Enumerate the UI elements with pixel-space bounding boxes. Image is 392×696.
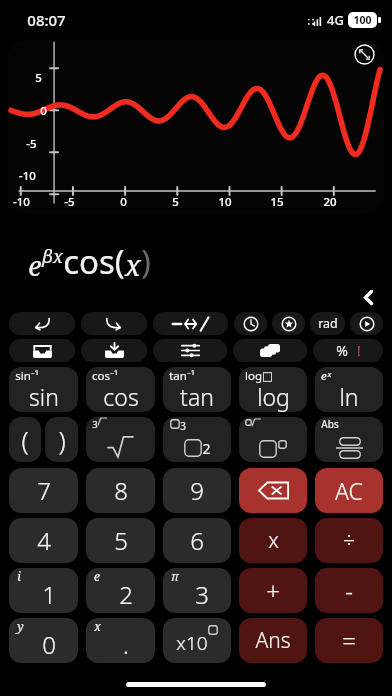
button[interactable]: Root and power (239, 417, 307, 462)
button[interactable]: ÷ (315, 518, 383, 563)
button[interactable]: 9 (163, 468, 231, 513)
staticText: 100 (353, 13, 372, 27)
button[interactable]: eˣ (315, 367, 383, 412)
staticText: βx (42, 244, 63, 269)
staticText: e (28, 247, 42, 284)
staticText: 15 (270, 194, 284, 210)
button[interactable]: cos⁻¹ (86, 367, 155, 412)
button[interactable]: e (86, 568, 155, 613)
staticText: ) (141, 239, 151, 284)
staticText: 0 (40, 103, 47, 119)
staticText: rad (318, 315, 338, 332)
button[interactable]: AC (315, 468, 383, 513)
button[interactable]: 7 (9, 468, 78, 513)
staticText: cos⁻¹ (92, 368, 118, 384)
button[interactable]: Expand graph (354, 44, 375, 65)
staticText: π (171, 568, 179, 584)
staticText: x (94, 618, 101, 634)
button[interactable]: Angle unit radians (310, 312, 345, 335)
button[interactable]: - (315, 568, 383, 613)
button[interactable]: Favourites (272, 312, 305, 335)
button[interactable]: Cube root and square root (86, 417, 155, 462)
staticText: 5 (35, 70, 42, 86)
button[interactable]: Ans (239, 618, 307, 663)
button[interactable]: Run (350, 312, 383, 335)
button[interactable]: i (9, 568, 78, 613)
button[interactable]: = (315, 618, 383, 663)
staticText: x (268, 526, 279, 555)
staticText: Ans (255, 626, 291, 655)
button[interactable]: Undo (9, 312, 75, 335)
button[interactable]: 8 (86, 468, 155, 513)
staticText: e (94, 568, 100, 584)
staticText: log□ (245, 368, 273, 384)
button[interactable]: 5 (86, 518, 155, 563)
staticText: ! (357, 341, 361, 360)
button[interactable]: Percent and factorial (313, 339, 383, 362)
staticText: 2 (202, 439, 211, 458)
staticText: 0 (42, 628, 56, 661)
staticText: 3 (180, 419, 186, 433)
staticText: 10 (218, 194, 232, 210)
staticText: -10 (13, 194, 30, 210)
button[interactable]: Tabs (233, 339, 307, 362)
button[interactable]: π (163, 568, 231, 613)
staticText: cos( (63, 239, 125, 284)
staticText: 08:07 (27, 10, 66, 30)
staticText: Abs (321, 417, 339, 431)
staticText: 8 (114, 474, 128, 507)
staticText: tan (180, 381, 214, 412)
button[interactable]: Previous (355, 284, 381, 310)
button[interactable]: Solve for variable (153, 312, 228, 335)
staticText: 7 (37, 474, 51, 507)
staticText: eˣ (321, 368, 331, 384)
button[interactable]: Backspace (239, 468, 307, 513)
button[interactable]: x (239, 518, 307, 563)
button[interactable]: History (234, 312, 267, 335)
button[interactable]: Save (81, 339, 147, 362)
staticText: = (342, 624, 356, 657)
button[interactable]: ( (9, 417, 41, 462)
staticText: 2 (119, 578, 133, 611)
staticText: 1 (42, 578, 56, 611)
button[interactable]: Times ten to the power (163, 618, 231, 663)
staticText: cos (103, 381, 139, 412)
staticText: 4G (327, 11, 344, 29)
button[interactable]: tan⁻¹ (163, 367, 231, 412)
button[interactable]: Load (9, 339, 75, 362)
staticText: - (345, 574, 353, 607)
button[interactable]: Absolute value and fraction (315, 417, 383, 462)
button[interactable]: x (86, 618, 155, 663)
staticText: sin (29, 381, 59, 412)
staticText: x (125, 245, 141, 284)
staticText: 5 (114, 524, 128, 557)
button[interactable]: 5 (8, 40, 384, 214)
button[interactable]: + (239, 568, 307, 613)
staticText: 5 (172, 194, 179, 210)
staticText: 3 (92, 418, 98, 431)
staticText: ( (21, 422, 29, 457)
staticText: 6 (190, 524, 204, 557)
button[interactable]: 4 (9, 518, 78, 563)
button[interactable]: log□ (239, 367, 307, 412)
staticText: -5 (64, 194, 75, 210)
button[interactable]: Settings (153, 339, 227, 362)
staticText: sin⁻¹ (15, 368, 39, 384)
staticText: 4 (37, 524, 51, 557)
staticText: 3 (195, 578, 209, 611)
button[interactable]: Cube and square (163, 417, 231, 462)
staticText: y (17, 618, 24, 634)
staticText: log (257, 381, 290, 412)
button[interactable]: sin⁻¹ (9, 367, 78, 412)
staticText: i (17, 568, 21, 584)
staticText: x10 (176, 630, 208, 656)
button[interactable]: 6 (163, 518, 231, 563)
staticText: 0 (120, 194, 127, 210)
staticText: -5 (26, 136, 37, 152)
staticText: + (266, 574, 280, 607)
staticText: AC (335, 475, 363, 506)
button[interactable]: ) (45, 417, 78, 462)
button[interactable]: y (9, 618, 78, 663)
staticText: 20 (323, 194, 337, 210)
button[interactable]: Redo (81, 312, 147, 335)
